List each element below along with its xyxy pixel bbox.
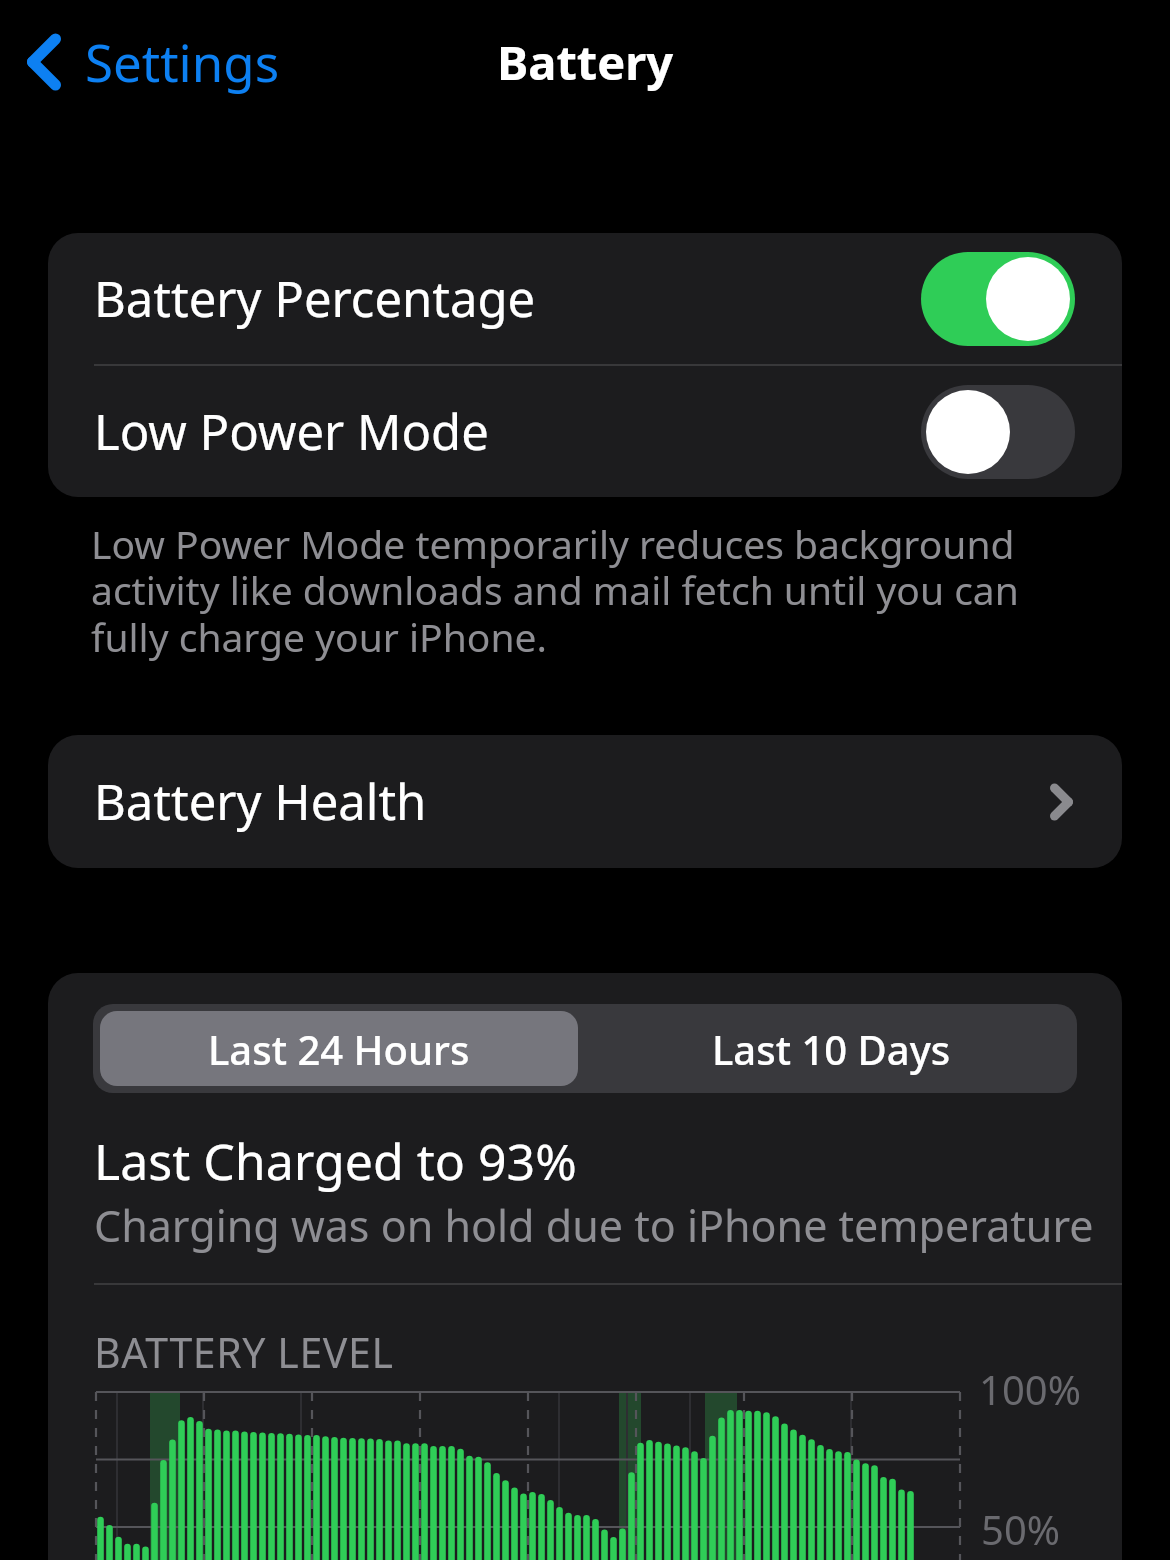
- staticText: Battery Health: [94, 768, 427, 835]
- button[interactable]: Last 10 Days: [585, 1004, 1077, 1093]
- button[interactable]: Battery Percentage: [48, 233, 1122, 364]
- staticText: 100%: [979, 1362, 1081, 1416]
- staticText: Battery: [497, 30, 674, 94]
- button[interactable]: Back to Settings: [27, 27, 280, 96]
- staticText: Battery Percentage: [94, 265, 921, 332]
- staticText: Last 10 Days: [712, 1022, 951, 1076]
- staticText: Charging was on hold due to iPhone tempe…: [94, 1196, 1094, 1255]
- staticText: Low Power Mode: [94, 398, 921, 465]
- button[interactable]: Battery Health: [48, 735, 1122, 868]
- staticText: Settings: [85, 27, 280, 96]
- button[interactable]: Low Power Mode: [48, 366, 1122, 497]
- staticText: 50%: [981, 1502, 1060, 1556]
- staticText: BATTERY LEVEL: [94, 1324, 394, 1380]
- staticText: Low Power Mode temporarily reduces backg…: [91, 517, 1062, 664]
- staticText: Last Charged to 93%: [94, 1127, 577, 1195]
- button[interactable]: Last 24 Hours: [100, 1011, 578, 1086]
- staticText: Last 24 Hours: [208, 1022, 470, 1076]
